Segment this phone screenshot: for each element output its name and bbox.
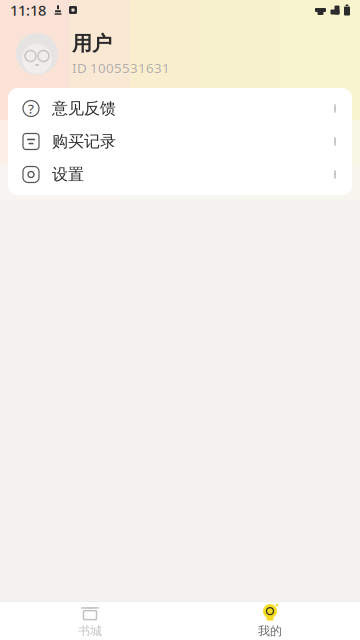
button[interactable]: 我的 [180,602,360,640]
staticText: 11:18 [10,0,46,20]
button[interactable]: ? [8,92,352,125]
button[interactable]: 购买记录 [8,125,352,158]
staticText: ID 1005531631 [72,59,170,77]
button[interactable]: 设置 [8,158,352,191]
staticText: 意见反馈 [52,99,116,118]
staticText: 购买记录 [52,132,116,151]
button[interactable]: 书城 [0,602,180,640]
staticText: 设置 [52,165,84,184]
staticText: ? [28,100,34,117]
staticText: 书城 [78,624,102,638]
button[interactable]: 用户 [0,20,360,88]
staticText: 我的 [258,624,282,638]
staticText: 用户 [72,31,112,56]
